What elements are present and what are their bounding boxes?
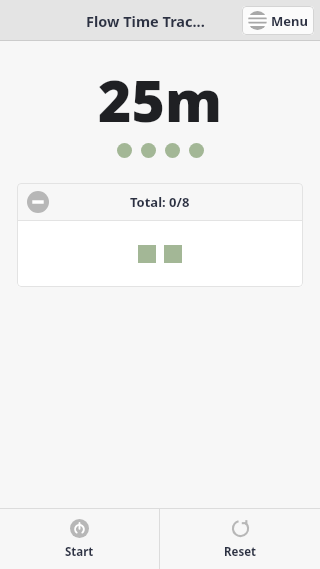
staticText: Reset xyxy=(224,544,257,560)
staticText: Total: 0/8 xyxy=(130,193,190,211)
button[interactable]: Remove xyxy=(26,190,50,214)
button[interactable]: Start xyxy=(0,509,159,569)
button[interactable]: Reset xyxy=(160,509,320,569)
staticText: Flow Time Trac... xyxy=(86,11,205,31)
button[interactable]: Menu xyxy=(242,6,314,35)
staticText: Menu xyxy=(271,12,308,30)
staticText: Start xyxy=(65,544,94,560)
staticText: 25m xyxy=(0,61,320,139)
